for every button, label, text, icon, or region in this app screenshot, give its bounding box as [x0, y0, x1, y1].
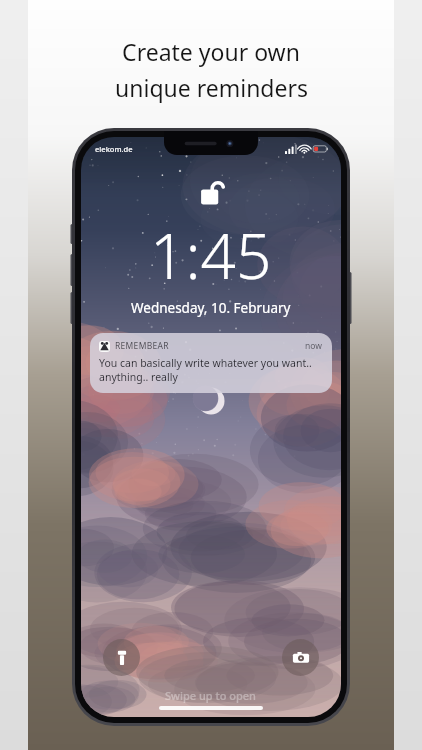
button[interactable]: Camera [282, 639, 319, 676]
button[interactable] [159, 706, 263, 710]
button[interactable]: REMEMBEAR [90, 333, 332, 393]
button[interactable]: Flashlight [103, 639, 140, 676]
staticText: REMEMBEAR [115, 340, 169, 352]
staticText: Wednesday, 10. February [131, 299, 291, 317]
staticText: Create your own [122, 36, 300, 67]
staticText: unique reminders [115, 72, 308, 103]
staticText: elekom.de [95, 144, 133, 154]
staticText: now [305, 340, 322, 352]
staticText: You can basically write whatever you wan… [99, 356, 312, 384]
staticText: Swipe up to open [165, 688, 257, 703]
staticText: 1:45 [150, 213, 272, 297]
